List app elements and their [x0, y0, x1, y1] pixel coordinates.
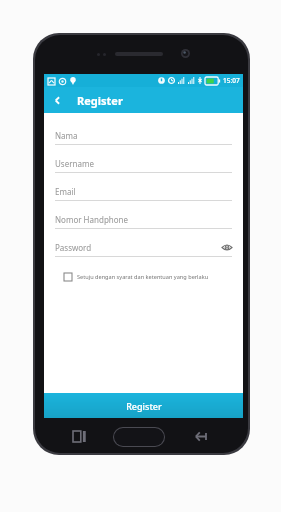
- other: Recents: [73, 431, 86, 442]
- button[interactable]: Nomor Handphone: [55, 211, 232, 239]
- staticText: Register: [126, 400, 162, 412]
- button[interactable]: Register: [44, 393, 243, 418]
- staticText: Setuju dengan syarat dan ketentuan yang …: [77, 273, 209, 281]
- staticText: Email: [55, 186, 76, 197]
- button[interactable]: Email: [55, 183, 232, 211]
- other: Home: [114, 428, 164, 446]
- button[interactable]: Setuju dengan syarat dan ketentuan yang …: [64, 273, 232, 281]
- staticText: Password: [55, 242, 92, 253]
- button[interactable]: Username: [55, 155, 232, 183]
- staticText: Nama: [55, 130, 78, 141]
- other: Show password: [222, 244, 232, 251]
- staticText: Nomor Handphone: [55, 214, 129, 225]
- staticText: 15:07: [223, 76, 240, 85]
- button[interactable]: Password: [55, 239, 232, 267]
- button[interactable]: Nama: [55, 127, 232, 155]
- other: Back: [193, 431, 206, 442]
- button[interactable]: Back: [48, 91, 66, 109]
- staticText: Username: [55, 158, 94, 169]
- staticText: Register: [77, 93, 123, 108]
